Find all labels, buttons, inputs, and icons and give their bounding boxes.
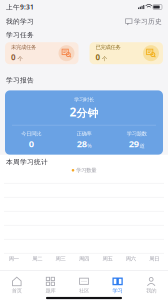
staticText: 0 [29, 137, 34, 150]
button[interactable]: 学习历史 [125, 17, 162, 26]
staticText: 周五 [102, 255, 112, 262]
staticText: 社区 [79, 287, 89, 294]
staticText: 今日同比 [21, 130, 41, 137]
button[interactable]: 学习 [101, 276, 134, 294]
staticText: 本周学习统计 [6, 158, 48, 166]
staticText: 28 [77, 137, 87, 150]
staticText: 2 [69, 104, 76, 120]
staticText: 学习 [113, 287, 123, 294]
staticText: 周四 [79, 255, 89, 262]
staticText: 上午9:31 [6, 3, 34, 11]
staticText: 我的学习 [6, 17, 34, 26]
staticText: 首页 [12, 287, 22, 294]
staticText: 正确率 [76, 130, 91, 137]
staticText: 已完成任务 [95, 44, 120, 50]
button[interactable]: 未完成任务 [5, 42, 78, 64]
staticText: 未完成任务 [11, 44, 36, 50]
staticText: 我的 [146, 287, 156, 294]
staticText: 学习历史 [134, 17, 162, 26]
staticText: 题库 [45, 287, 55, 294]
staticText: 个 [102, 55, 107, 62]
button[interactable]: 我的 [134, 276, 168, 294]
staticText: 周日 [149, 255, 159, 262]
staticText: 学习任务 [6, 31, 34, 39]
button[interactable]: 已完成任务 [89, 42, 163, 64]
staticText: 学习报告 [6, 76, 34, 84]
staticText: 个 [17, 55, 22, 62]
staticText: 周六 [126, 255, 136, 262]
button[interactable]: 首页 [0, 276, 34, 294]
staticText [145, 3, 146, 11]
staticText: 0 [11, 52, 16, 62]
staticText [152, 3, 153, 11]
button[interactable]: 社区 [67, 276, 101, 294]
staticText: 0 [95, 52, 100, 62]
staticText: 周二 [32, 255, 42, 262]
staticText: 学习时长 [74, 96, 94, 103]
staticText: 学习数量 [76, 167, 96, 174]
staticText: % [87, 142, 91, 149]
staticText: 周一 [9, 255, 19, 262]
button[interactable]: 题库 [34, 276, 67, 294]
staticText: 29 [129, 137, 139, 150]
staticText: 周三 [56, 255, 66, 262]
staticText: 分钟 [76, 107, 98, 120]
staticText: 学习题数 [127, 130, 147, 137]
staticText: 道 [139, 143, 144, 149]
